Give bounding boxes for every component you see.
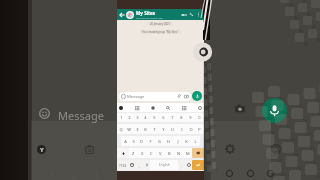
staticText: V <box>159 151 162 156</box>
button[interactable]: M <box>183 148 192 158</box>
staticText: , <box>139 163 140 168</box>
staticText: Z <box>132 151 135 156</box>
button[interactable]: Voice call <box>189 12 194 17</box>
staticText: D <box>140 139 143 144</box>
button[interactable]: E <box>133 124 141 134</box>
staticText: K <box>185 139 188 144</box>
button[interactable]: R <box>141 124 150 134</box>
button[interactable]: D <box>137 136 146 146</box>
staticText: F <box>149 139 152 144</box>
button[interactable]: Back <box>119 12 125 18</box>
staticText: ?123 <box>119 163 127 168</box>
button[interactable]: Record voice message <box>192 91 202 101</box>
button[interactable]: 0 <box>195 113 204 122</box>
button[interactable]: P <box>195 124 204 134</box>
button[interactable]: W <box>125 124 133 134</box>
button[interactable]: Themes <box>134 105 139 110</box>
button[interactable]: U <box>168 124 177 134</box>
button[interactable]: 3 <box>133 113 141 122</box>
button[interactable]: L <box>191 136 200 146</box>
staticText: English <box>159 163 170 167</box>
button[interactable]: 1 <box>117 113 125 122</box>
button[interactable]: C <box>147 148 156 158</box>
button[interactable]: Video call <box>181 12 187 18</box>
staticText: 26 January 2021 <box>150 22 171 26</box>
button[interactable]: More options <box>196 12 201 17</box>
button[interactable]: O <box>186 124 195 134</box>
staticText: 1 <box>120 115 123 120</box>
button[interactable]: Space <box>150 160 178 170</box>
staticText: W <box>127 127 131 132</box>
button[interactable]: Camera <box>184 94 189 99</box>
button[interactable]: Gboard <box>119 106 123 110</box>
button[interactable]: Voice input <box>143 160 150 170</box>
staticText: 2 <box>128 115 131 120</box>
button[interactable]: Settings <box>197 105 202 110</box>
staticText: 8 <box>180 115 183 120</box>
staticText: U <box>171 127 174 132</box>
button[interactable]: I <box>177 124 186 134</box>
staticText: E <box>136 127 139 132</box>
button[interactable]: 6 <box>159 113 168 122</box>
button[interactable]: ?123 <box>117 160 128 170</box>
button[interactable]: Settings <box>185 160 192 170</box>
staticText: 4 <box>144 115 147 120</box>
button[interactable]: Clipboard <box>181 105 186 110</box>
staticText: tap here for group info <box>136 16 163 19</box>
button[interactable]: 5 <box>150 113 159 122</box>
button[interactable]: 2 <box>125 113 133 122</box>
staticText: 6 <box>162 115 165 120</box>
button[interactable]: Attach <box>177 94 182 99</box>
button[interactable]: Q <box>117 124 125 134</box>
button[interactable]: 7 <box>168 113 177 122</box>
button[interactable]: 9 <box>186 113 195 122</box>
button[interactable]: Enter <box>192 160 204 170</box>
button[interactable]: Back <box>117 9 204 20</box>
button[interactable]: 8 <box>177 113 186 122</box>
button[interactable]: Shift <box>117 148 129 158</box>
staticText: Q <box>119 127 123 132</box>
button[interactable]: Emoji <box>128 160 136 170</box>
staticText: B <box>168 151 171 156</box>
staticText: 9 <box>189 115 192 120</box>
button[interactable]: J <box>173 136 182 146</box>
button[interactable]: 4 <box>141 113 150 122</box>
button[interactable]: G <box>155 136 164 146</box>
staticText: A <box>124 139 127 144</box>
staticText: My Sites <box>136 10 156 16</box>
button[interactable]: Stickers <box>150 105 155 110</box>
button[interactable]: Search <box>165 105 170 110</box>
button[interactable]: , <box>136 160 143 170</box>
staticText: J <box>177 139 179 144</box>
staticText: You created group “My Sites” <box>142 30 179 34</box>
button[interactable]: B <box>165 148 174 158</box>
staticText: G <box>158 139 161 144</box>
staticText: 0 <box>198 115 201 120</box>
button[interactable]: K <box>182 136 191 146</box>
button[interactable]: N <box>174 148 183 158</box>
staticText: Message <box>58 108 104 123</box>
button[interactable]: X <box>138 148 147 158</box>
staticText: N <box>177 151 181 156</box>
staticText: X <box>141 151 144 156</box>
button[interactable]: A <box>121 136 129 146</box>
button[interactable]: Z <box>129 148 138 158</box>
staticText: 3 <box>136 115 139 120</box>
staticText: 5 <box>153 115 156 120</box>
button[interactable]: S <box>129 136 137 146</box>
button[interactable]: H <box>164 136 173 146</box>
button[interactable]: F <box>146 136 155 146</box>
button[interactable]: Backspace <box>192 148 204 158</box>
staticText: H <box>167 139 170 144</box>
staticText: O <box>189 127 193 132</box>
button[interactable]: V <box>156 148 165 158</box>
staticText: 7 <box>171 115 174 120</box>
button[interactable]: T <box>150 124 159 134</box>
staticText: M <box>186 151 190 156</box>
staticText: C <box>150 151 153 156</box>
button[interactable]: Message <box>119 92 191 101</box>
button[interactable]: Y <box>159 124 168 134</box>
